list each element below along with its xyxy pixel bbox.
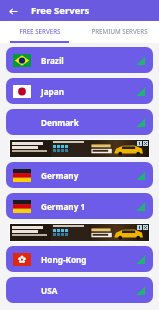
button[interactable]: Advertisement — [9, 139, 150, 158]
button[interactable]: PREMIUM SERVERS — [79, 21, 159, 41]
staticText: Germany 1 — [41, 201, 86, 212]
button[interactable]: FREE SERVERS — [0, 21, 79, 41]
staticText: Free Servers — [31, 4, 90, 17]
staticText: Denmark — [41, 117, 79, 128]
button[interactable]: Denmark — [6, 109, 153, 135]
button[interactable]: Back — [5, 3, 21, 19]
button[interactable]: Japan — [6, 78, 153, 104]
staticText: PREMIUM SERVERS — [91, 27, 148, 35]
button[interactable]: Germany — [6, 162, 153, 188]
button[interactable]: Germany 1 — [6, 193, 153, 219]
staticText: USA — [41, 285, 58, 296]
staticText: FREE SERVERS — [19, 27, 61, 35]
button[interactable]: Hong-Kong — [6, 246, 153, 272]
button[interactable]: Advertisement — [9, 223, 150, 242]
button[interactable]: Brazil — [6, 47, 153, 73]
staticText: Hong-Kong — [41, 254, 87, 265]
staticText: Brazil — [41, 55, 64, 66]
button[interactable]: USA — [6, 277, 153, 303]
staticText: Japan — [41, 86, 65, 97]
staticText: Germany — [41, 170, 79, 181]
